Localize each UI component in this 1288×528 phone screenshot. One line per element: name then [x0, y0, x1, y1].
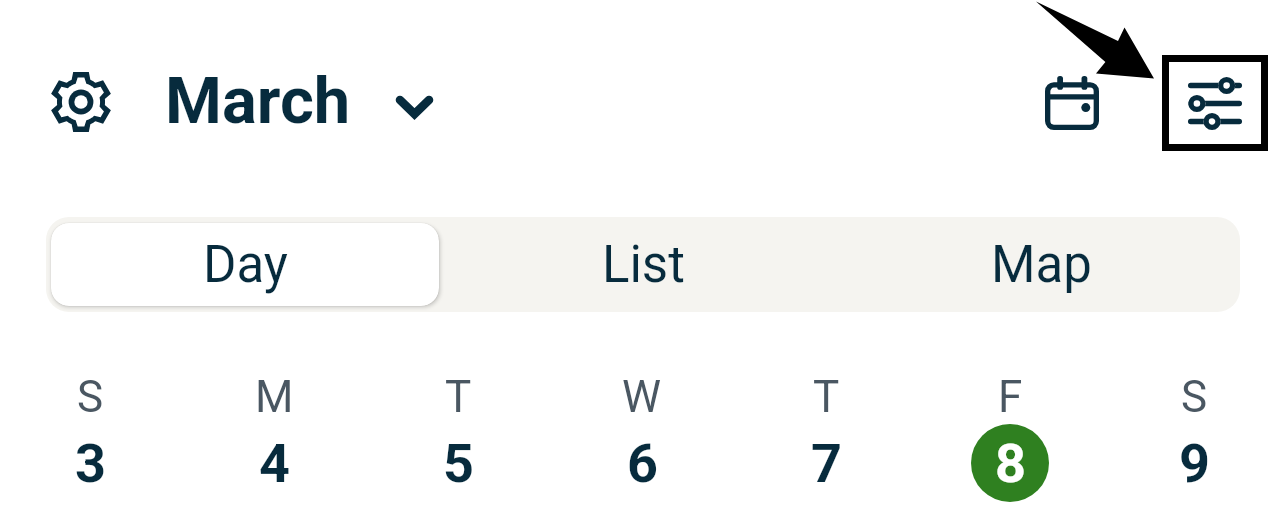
button[interactable]: T [734, 365, 918, 515]
staticText: 5 [443, 432, 474, 495]
staticText: S [1181, 371, 1208, 423]
button[interactable]: Settings [45, 66, 117, 138]
staticText: 3 [75, 432, 106, 495]
button[interactable]: Calendar [1031, 62, 1113, 144]
button[interactable]: March [165, 61, 433, 141]
button[interactable]: T [366, 365, 550, 515]
staticText: W [622, 371, 662, 423]
button[interactable]: M [182, 365, 366, 515]
staticText: 4 [259, 432, 290, 495]
staticText: T [813, 371, 840, 423]
staticText: Map [991, 235, 1092, 295]
staticText: F [998, 371, 1023, 423]
staticText: March [165, 63, 351, 139]
button[interactable]: Filter [1169, 62, 1261, 144]
staticText: M [255, 371, 294, 423]
staticText: 7 [811, 432, 842, 495]
button[interactable]: S [1102, 365, 1286, 515]
staticText: T [445, 371, 472, 423]
button[interactable]: S [0, 365, 182, 515]
button[interactable]: Map [847, 223, 1235, 306]
staticText: 9 [1179, 432, 1210, 495]
staticText: 6 [627, 432, 658, 495]
button[interactable]: F [918, 365, 1102, 515]
staticText: Day [203, 235, 288, 295]
button[interactable]: W [550, 365, 734, 515]
staticText: S [77, 371, 104, 423]
staticText: List [602, 235, 685, 295]
button[interactable]: Day [51, 223, 439, 306]
staticText: 8 [995, 432, 1026, 495]
button[interactable]: List [449, 223, 837, 306]
